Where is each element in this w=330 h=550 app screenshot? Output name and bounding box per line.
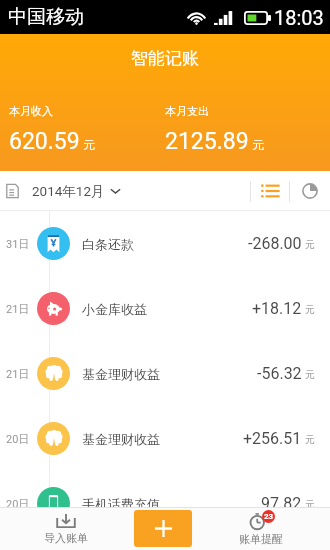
staticText: 元 xyxy=(305,303,315,316)
staticText: -56.32 xyxy=(257,364,302,383)
staticText: 2125.89 xyxy=(165,128,249,155)
staticText: 20日 xyxy=(6,432,30,446)
staticText: 基金理财收益 xyxy=(82,366,160,382)
button[interactable]: Add record xyxy=(134,510,192,547)
staticText: 白条还款 xyxy=(82,236,134,252)
staticText: +18.12 xyxy=(252,299,302,318)
button[interactable]: List view xyxy=(251,171,289,211)
staticText: 中国移动 xyxy=(8,5,84,29)
staticText: 导入账单 xyxy=(44,531,88,545)
staticText: 31日 xyxy=(6,237,30,251)
button[interactable]: 21日 xyxy=(0,276,330,341)
staticText: 元 xyxy=(305,238,315,251)
staticText: 21日 xyxy=(6,367,30,381)
staticText: 小金库收益 xyxy=(82,301,147,317)
button[interactable]: 2014年12月 xyxy=(6,171,121,211)
staticText: 18:03 xyxy=(274,6,324,29)
staticText: 元 xyxy=(305,433,315,446)
staticText: 账单提醒 xyxy=(239,532,283,546)
button[interactable]: 导入账单 xyxy=(10,507,122,550)
staticText: 21日 xyxy=(6,302,30,316)
staticText: 20日 xyxy=(6,497,30,511)
staticText: 23 xyxy=(264,512,274,521)
button[interactable]: 23 xyxy=(205,507,317,550)
staticText: 97.82 xyxy=(261,494,302,513)
staticText: 620.59 xyxy=(9,128,80,155)
staticText: 2014年12月 xyxy=(32,183,105,200)
staticText: 元 xyxy=(83,137,95,152)
staticText: +256.51 xyxy=(243,429,302,448)
staticText: 本月收入 xyxy=(9,104,53,118)
button[interactable]: Chart view xyxy=(290,171,330,211)
button[interactable]: 31日 xyxy=(0,211,330,276)
button[interactable]: 21日 xyxy=(0,341,330,406)
staticText: 元 xyxy=(305,498,315,511)
staticText: 智能记账 xyxy=(131,48,199,69)
staticText: 手机话费充值 xyxy=(82,496,160,512)
staticText: -268.00 xyxy=(248,234,302,253)
button[interactable]: 20日 xyxy=(0,406,330,471)
button[interactable]: 20日 xyxy=(0,471,330,536)
staticText: 基金理财收益 xyxy=(82,431,160,447)
staticText: 本月支出 xyxy=(165,104,209,118)
staticText: 元 xyxy=(252,137,264,152)
staticText: 元 xyxy=(305,368,315,381)
